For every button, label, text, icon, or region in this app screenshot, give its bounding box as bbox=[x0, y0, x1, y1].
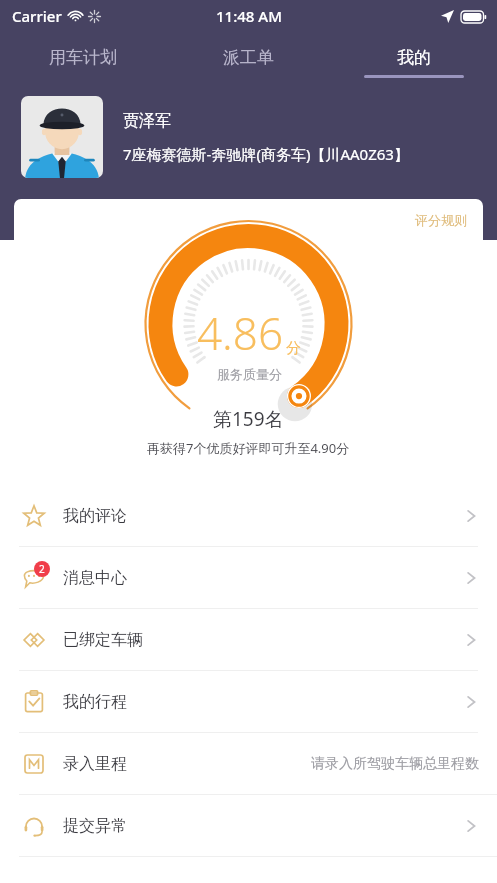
staticText: 服务质量分 bbox=[217, 366, 282, 382]
staticText: 再获得7个优质好评即可升至4.90分 bbox=[147, 439, 350, 457]
staticText: 已绑定车辆 bbox=[63, 630, 143, 650]
staticText: 我的行程 bbox=[63, 692, 127, 712]
staticText: 用车计划 bbox=[49, 47, 117, 68]
other: Open 我的评论 bbox=[463, 508, 479, 524]
staticText: 评分规则 bbox=[415, 212, 467, 228]
button[interactable]: 我的行程 bbox=[0, 671, 497, 732]
button[interactable]: 贾泽军 bbox=[0, 82, 497, 192]
button[interactable]: 我的 bbox=[331, 32, 497, 82]
button[interactable]: 派工单 bbox=[165, 32, 331, 82]
staticText: 派工单 bbox=[223, 47, 274, 68]
button[interactable]: 2 bbox=[0, 547, 497, 608]
staticText: 请录入所驾驶车辆总里程数 bbox=[311, 755, 479, 773]
staticText: 消息中心 bbox=[63, 568, 127, 588]
other: Open 消息中心 bbox=[463, 570, 479, 586]
staticText: 我的评论 bbox=[63, 506, 127, 526]
button[interactable]: 用车计划 bbox=[0, 32, 165, 82]
staticText: 录入里程 bbox=[63, 754, 127, 774]
staticText: 我的 bbox=[397, 47, 431, 68]
button[interactable]: 已绑定车辆 bbox=[0, 609, 497, 670]
button[interactable]: 评分规则 bbox=[415, 199, 483, 228]
staticText: 贾泽军 bbox=[123, 111, 171, 131]
other: Open 已绑定车辆 bbox=[463, 632, 479, 648]
staticText: 第159名 bbox=[213, 406, 284, 432]
staticText: 11:48 AM bbox=[216, 6, 282, 26]
staticText: 4.86 bbox=[197, 303, 284, 363]
staticText: 分 bbox=[286, 339, 301, 358]
staticText: 提交异常 bbox=[63, 816, 127, 836]
staticText: 7座梅赛德斯-奔驰牌(商务车)【川AA0Z63】 bbox=[123, 144, 409, 164]
staticText: Carrier bbox=[12, 6, 62, 26]
other: Open 提交异常 bbox=[463, 818, 479, 834]
button[interactable]: 录入里程 bbox=[0, 733, 497, 794]
other: Open 我的行程 bbox=[463, 694, 479, 710]
button[interactable]: 我的评论 bbox=[0, 485, 497, 546]
staticText: 2 bbox=[39, 562, 45, 576]
button[interactable]: 提交异常 bbox=[0, 795, 497, 856]
